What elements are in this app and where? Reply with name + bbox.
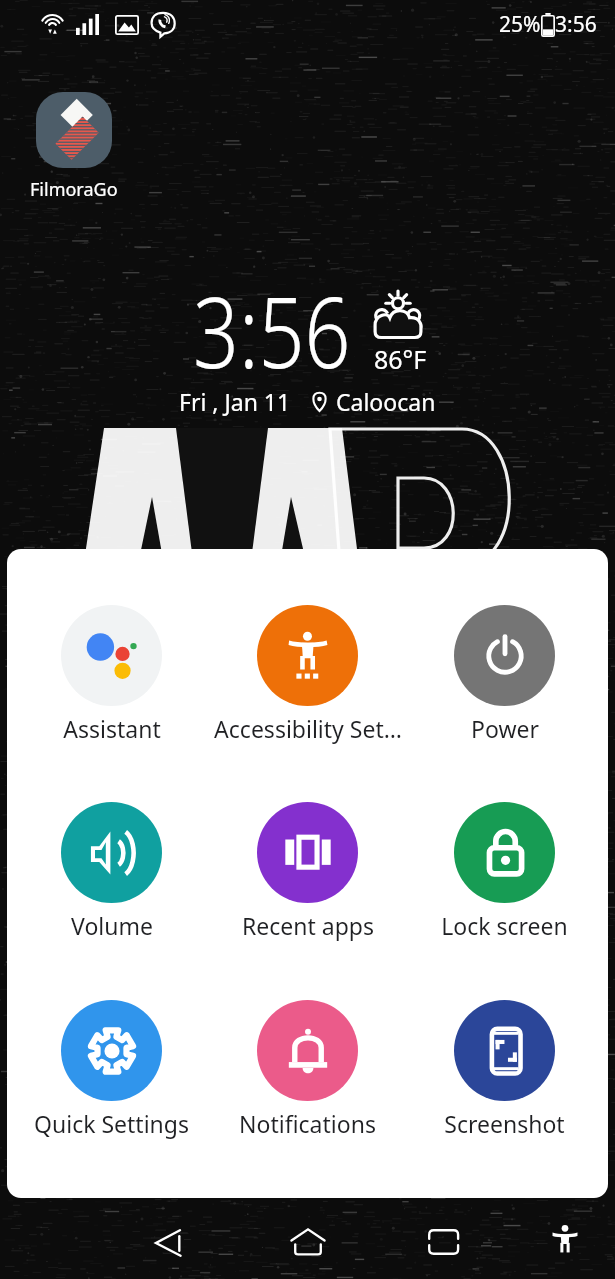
button[interactable]: Recent apps <box>215 802 400 940</box>
button[interactable]: Recent apps <box>416 1214 472 1270</box>
button[interactable]: Accessibility Set… <box>215 605 400 743</box>
staticText: Accessibility Set… <box>214 713 402 743</box>
button[interactable]: Home <box>280 1214 336 1270</box>
button[interactable]: Assistant <box>19 605 204 743</box>
button[interactable]: Volume <box>19 802 204 940</box>
staticText: Power <box>471 713 539 743</box>
staticText: Caloocan <box>336 386 436 417</box>
staticText: Screenshot <box>444 1108 565 1138</box>
staticText: Volume <box>71 910 153 940</box>
staticText: Fri , Jan 11 <box>179 386 291 417</box>
button[interactable]: Accessibility <box>539 1213 591 1265</box>
button[interactable]: Quick Settings <box>19 1000 204 1138</box>
staticText: 3:56 <box>193 263 351 396</box>
staticText: Quick Settings <box>34 1108 189 1138</box>
staticText: Notifications <box>239 1108 376 1138</box>
button[interactable]: Back <box>143 1215 199 1271</box>
staticText: 3:56 <box>555 10 597 39</box>
button[interactable]: Lock screen <box>412 802 597 940</box>
staticText: Lock screen <box>441 910 568 940</box>
button[interactable]: Power <box>412 605 597 743</box>
staticText: Assistant <box>63 713 161 743</box>
button[interactable]: FilmoraGo <box>26 92 122 202</box>
staticText: 25% <box>499 10 541 39</box>
button[interactable]: Notifications <box>215 1000 400 1138</box>
button[interactable]: Screenshot <box>412 1000 597 1138</box>
staticText: 86°F <box>374 342 427 376</box>
staticText: Recent apps <box>242 910 374 940</box>
staticText: FilmoraGo <box>30 177 118 202</box>
